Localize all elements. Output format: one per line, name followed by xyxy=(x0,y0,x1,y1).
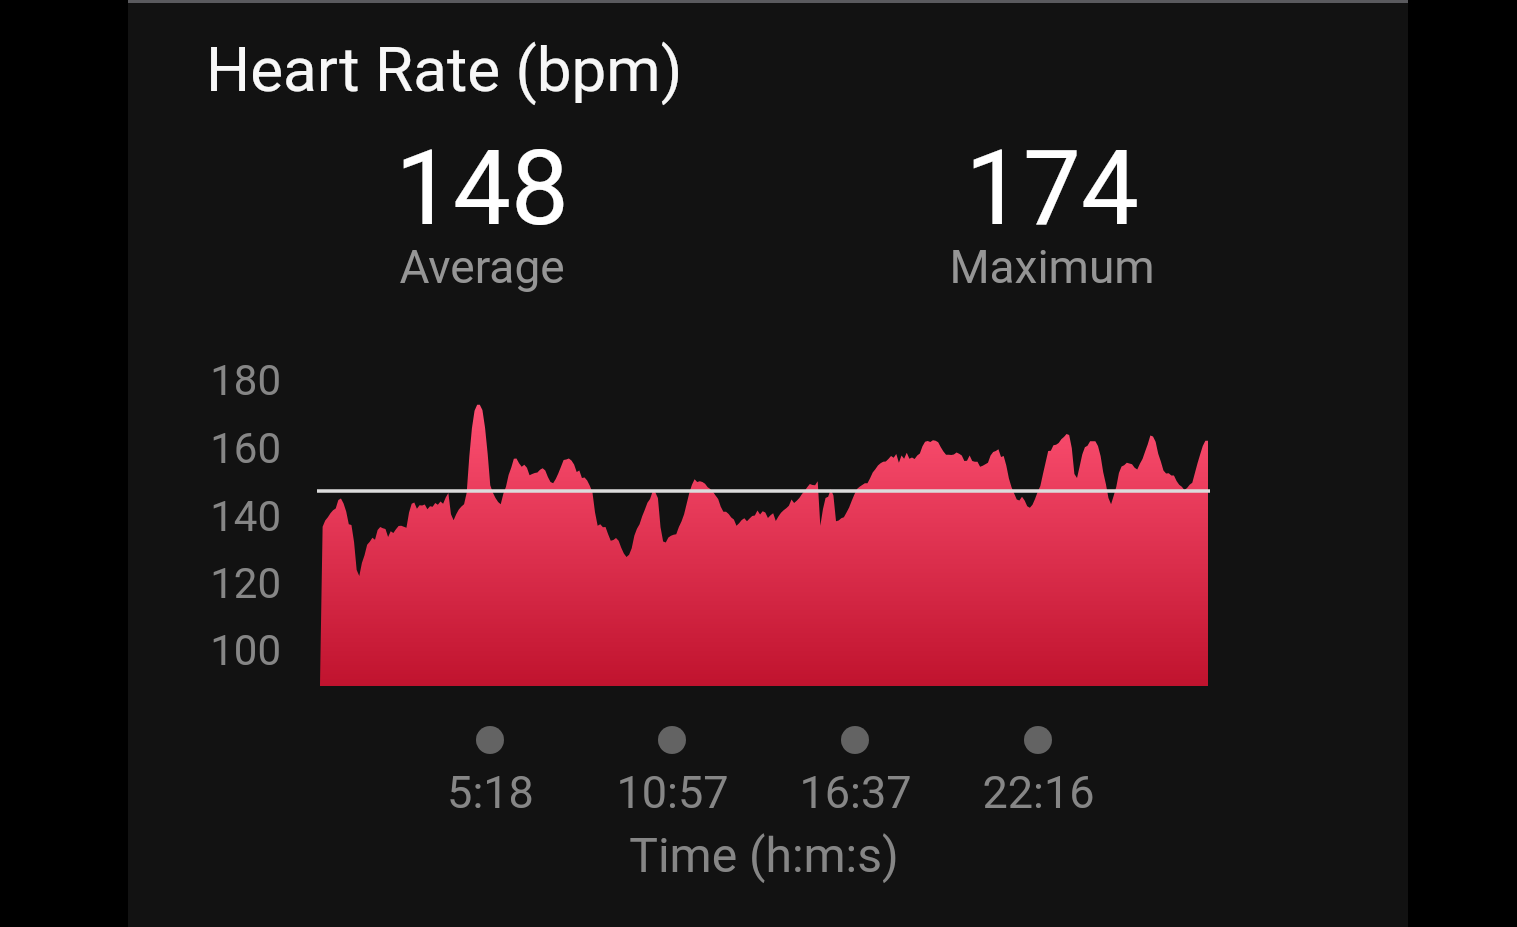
staticText: 174 xyxy=(852,128,1252,249)
staticText: 120 xyxy=(210,559,281,608)
staticText: 10:57 xyxy=(616,766,729,819)
button[interactable]: 148 xyxy=(282,128,682,308)
button[interactable]: Heart Rate (bpm) xyxy=(206,33,683,106)
button[interactable]: 174 xyxy=(852,128,1252,308)
staticText: Average xyxy=(282,240,682,294)
staticText: 100 xyxy=(210,626,281,675)
button[interactable]: Heart rate over time chart xyxy=(308,380,1220,698)
staticText: 148 xyxy=(282,128,682,249)
staticText: Maximum xyxy=(852,240,1252,294)
staticText: 22:16 xyxy=(982,766,1095,819)
staticText: 180 xyxy=(210,356,281,405)
staticText: 140 xyxy=(210,492,281,541)
staticText: 16:37 xyxy=(799,766,912,819)
staticText: Time (h:m:s) xyxy=(464,827,1064,883)
staticText: 5:18 xyxy=(447,766,534,819)
staticText: 160 xyxy=(210,424,281,473)
